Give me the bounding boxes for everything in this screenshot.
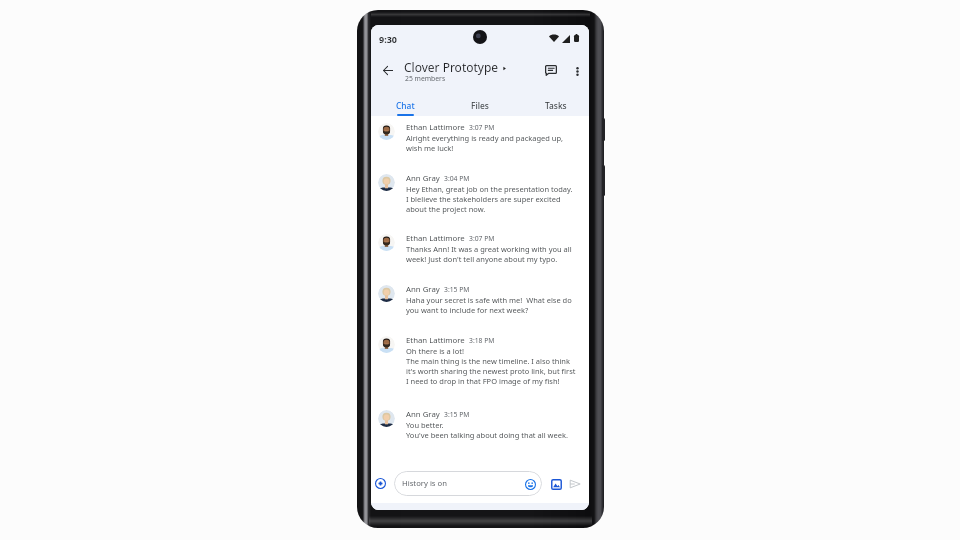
staticText: wish me luck! xyxy=(406,143,454,153)
staticText: 3:18 PM xyxy=(469,336,495,345)
staticText: Alright everything is ready and packaged… xyxy=(406,133,564,143)
button[interactable]: Ethan Lattimore xyxy=(377,119,582,162)
staticText: Ann Gray xyxy=(406,284,440,295)
button[interactable]: Back xyxy=(378,61,397,80)
staticText: Ann Gray xyxy=(406,173,440,184)
staticText: 3:15 PM xyxy=(444,410,470,419)
staticText: Thanks Ann! It was a great working with … xyxy=(406,244,572,254)
staticText: Haha your secret is safe with me! What e… xyxy=(406,295,572,305)
staticText: 3:07 PM xyxy=(469,123,495,132)
staticText: Clover Prototype xyxy=(404,59,499,75)
button[interactable]: Add attachment xyxy=(373,476,388,491)
staticText: Oh there is a lot! xyxy=(406,346,464,356)
staticText: I need to drop in that FPO image of my f… xyxy=(406,376,560,386)
staticText: You've been talking about doing that all… xyxy=(406,430,568,440)
staticText: Ethan Lattimore xyxy=(406,122,465,133)
staticText: History is on xyxy=(402,478,447,488)
button[interactable]: Open chat list xyxy=(545,65,557,76)
staticText: The main thing is the new timeline. I al… xyxy=(406,356,570,366)
staticText: you want to include for next week? xyxy=(406,305,529,315)
button[interactable]: Ann Gray xyxy=(377,170,582,224)
button[interactable]: Clover Prototype xyxy=(404,59,524,86)
staticText: Files xyxy=(471,100,489,111)
button[interactable]: Ethan Lattimore xyxy=(377,332,582,398)
button[interactable]: History is on xyxy=(394,471,542,496)
staticText: 3:07 PM xyxy=(469,234,495,243)
staticText: about the project now. xyxy=(406,204,486,214)
staticText: week! Just don't tell anyone about my ty… xyxy=(406,254,558,264)
button[interactable]: Insert image xyxy=(549,477,563,491)
button[interactable]: Chat xyxy=(379,96,431,118)
staticText: Ethan Lattimore xyxy=(406,335,465,346)
button[interactable]: Tasks xyxy=(530,96,582,118)
staticText: Ethan Lattimore xyxy=(406,233,465,244)
button[interactable]: Send message xyxy=(568,477,582,491)
staticText: 3:15 PM xyxy=(444,285,470,294)
staticText: 3:04 PM xyxy=(444,174,470,183)
staticText: You better. xyxy=(406,420,444,430)
staticText: Tasks xyxy=(545,100,567,111)
staticText: 9:30 xyxy=(379,33,397,45)
button[interactable]: More options xyxy=(570,62,584,81)
staticText: it's worth sharing the newest proto link… xyxy=(406,366,576,376)
button[interactable]: Ann Gray xyxy=(377,406,582,449)
staticText: Hey Ethan, great job on the presentation… xyxy=(406,184,573,194)
staticText: 25 members xyxy=(405,74,446,83)
button[interactable]: Files xyxy=(454,96,506,118)
staticText: I blelieve the stakeholders are super ex… xyxy=(406,194,561,204)
staticText: Chat xyxy=(396,100,415,111)
button[interactable]: Ann Gray xyxy=(377,281,582,324)
staticText: Ann Gray xyxy=(406,409,440,420)
button[interactable]: Ethan Lattimore xyxy=(377,230,582,273)
